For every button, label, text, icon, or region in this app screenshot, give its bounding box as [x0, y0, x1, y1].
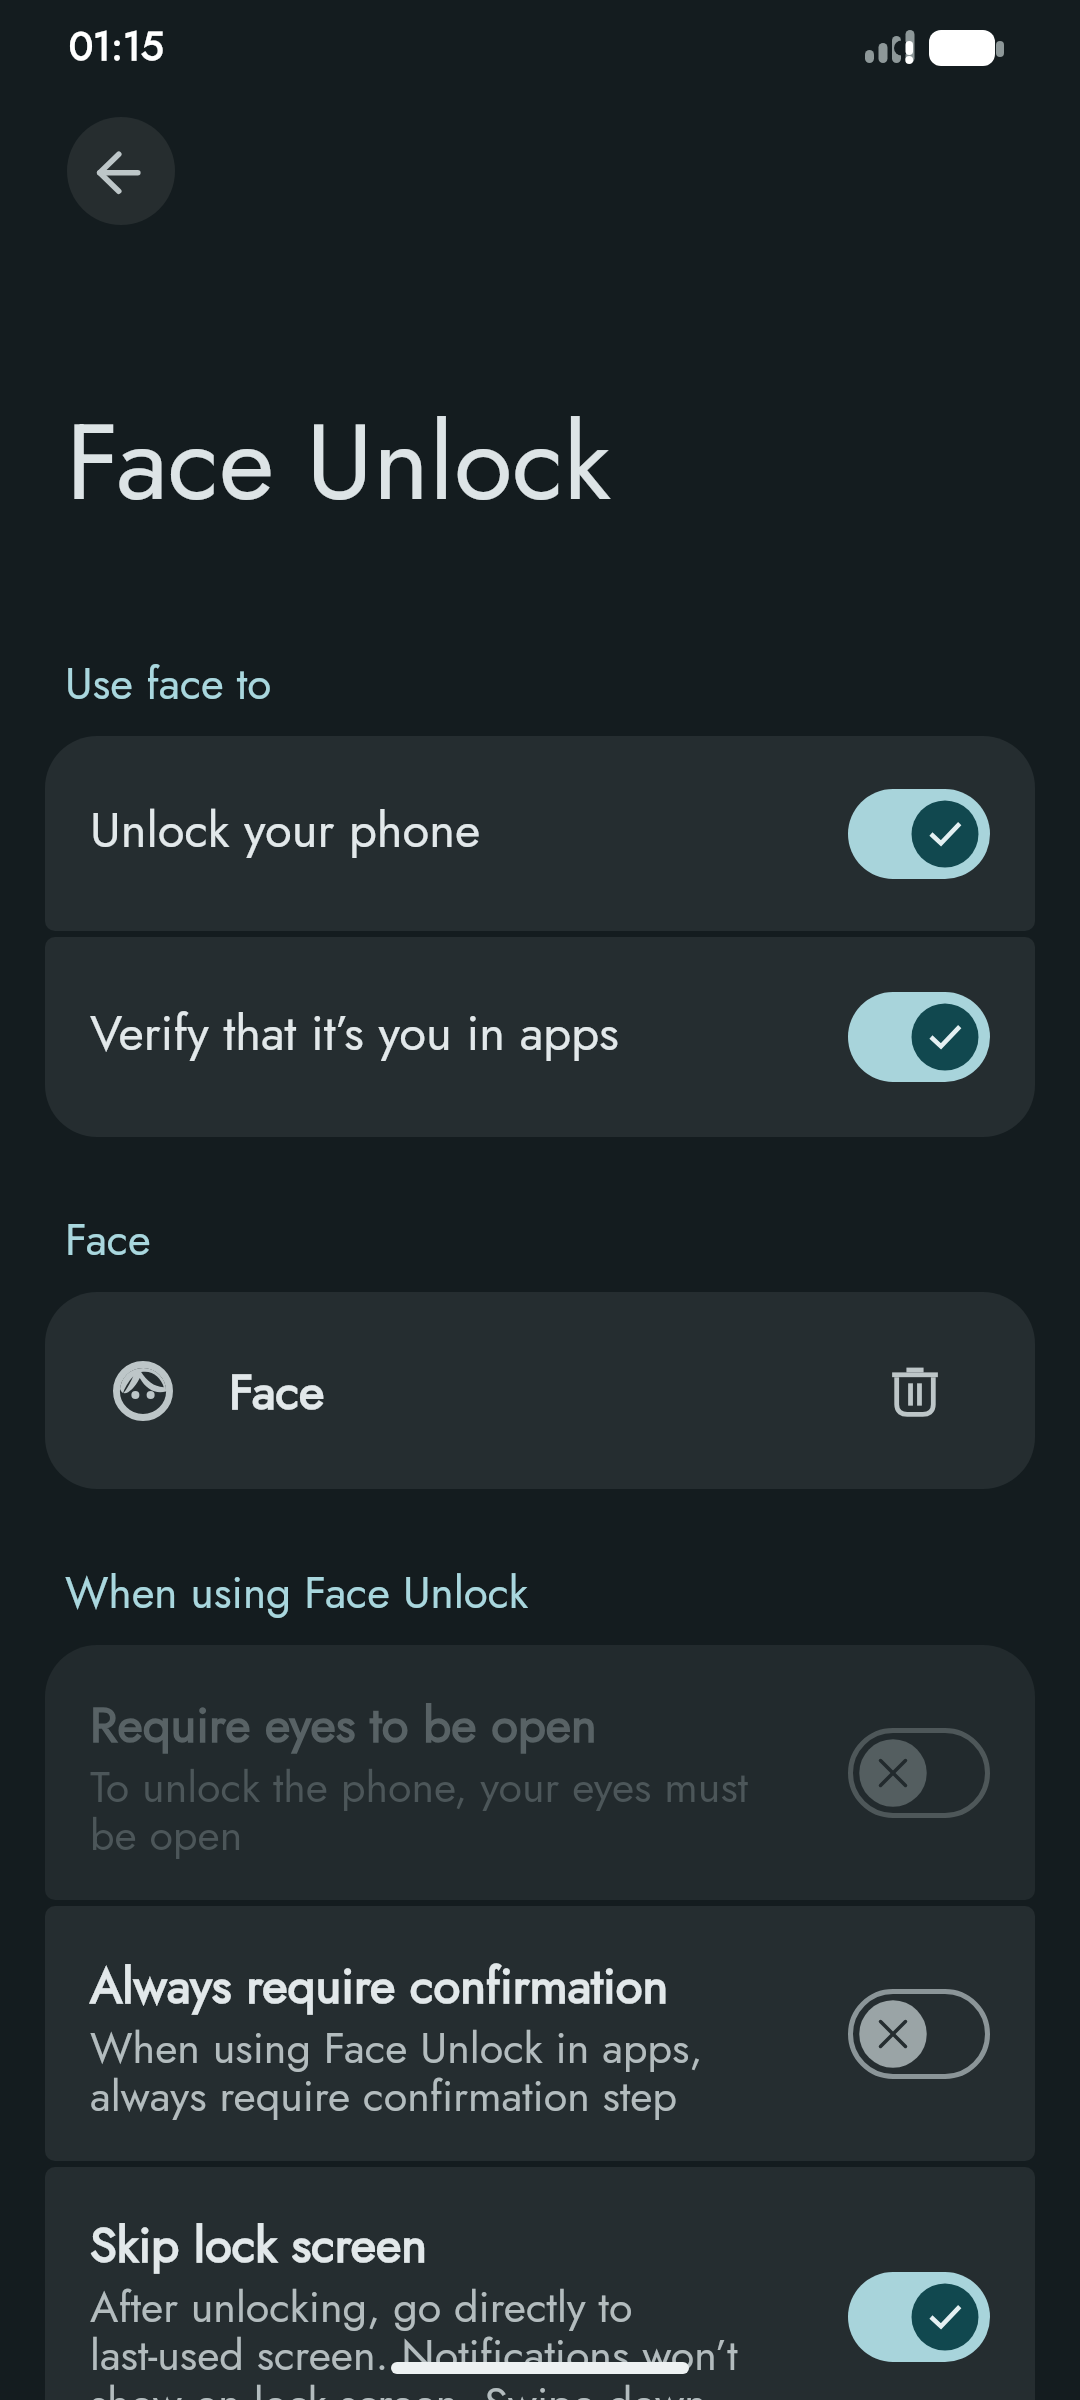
button[interactable]: Unlock your phone [45, 736, 1035, 931]
staticText: Face Unlock [66, 412, 611, 530]
staticText: Use face to [65, 662, 272, 712]
staticText: Skip lock screen [90, 2216, 427, 2278]
staticText: Require eyes to be open [90, 1696, 597, 1758]
button[interactable]: Skip lock screen [45, 2167, 1035, 2400]
staticText: To unlock the phone, your eyes must be o… [90, 1766, 749, 1862]
staticText: Unlock your phone [90, 806, 848, 862]
staticText: Face [65, 1218, 151, 1268]
staticText: When using Face Unlock in apps, always r… [90, 2027, 703, 2123]
staticText: Face [229, 1368, 875, 1424]
staticText: Verify that it’s you in apps [90, 1009, 848, 1065]
button[interactable]: Always require confirmation [45, 1906, 1035, 2161]
button[interactable]: Verify that it’s you in apps [45, 937, 1035, 1137]
staticText: Always require confirmation [90, 1957, 669, 2019]
button[interactable]: Face [45, 1292, 1035, 1489]
button[interactable]: Delete face [875, 1351, 955, 1431]
button[interactable]: Require eyes to be open [45, 1645, 1035, 1900]
staticText: After unlocking, go directly to last-use… [90, 2286, 738, 2400]
staticText: When using Face Unlock [65, 1571, 529, 1621]
staticText: 01:15 [69, 24, 164, 72]
button[interactable]: Back [67, 117, 175, 225]
